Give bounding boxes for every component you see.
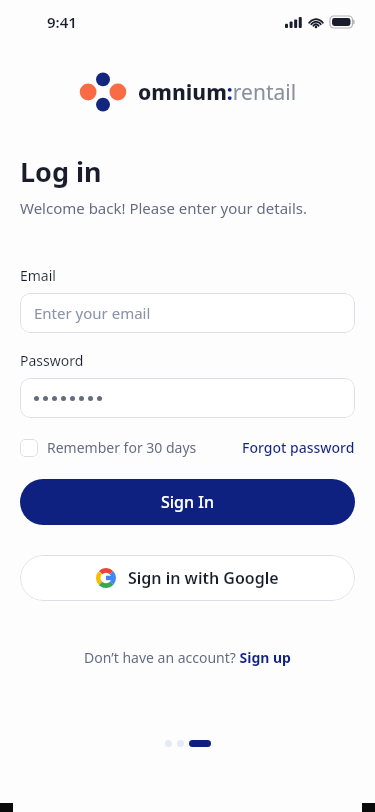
staticText: 9:41 xyxy=(47,12,77,32)
staticText: Password xyxy=(20,351,84,370)
staticText: Don’t have an account? Sign up xyxy=(84,648,291,667)
button[interactable]: Remember for 30 days xyxy=(20,438,197,457)
staticText: omnium:rentail xyxy=(138,78,297,107)
button[interactable]: Enter your email xyxy=(20,293,355,333)
staticText: Sign In xyxy=(161,491,214,513)
staticText: Remember for 30 days xyxy=(47,438,197,457)
other: Cellular signal xyxy=(285,17,302,28)
button[interactable]: Forgot password xyxy=(242,438,355,457)
button[interactable] xyxy=(20,378,355,418)
other: Wi-Fi xyxy=(308,17,324,28)
staticText: Forgot password xyxy=(242,438,355,457)
button[interactable]: Sign in with Google xyxy=(20,555,355,601)
staticText: Log in xyxy=(20,153,102,190)
other: Battery xyxy=(330,16,355,28)
staticText: Welcome back! Please enter your details. xyxy=(20,198,308,218)
button[interactable]: Sign In xyxy=(20,479,355,525)
staticText: Sign in with Google xyxy=(128,567,279,589)
staticText: Email xyxy=(20,266,56,285)
button[interactable]: Don’t have an account? Sign up xyxy=(84,648,291,667)
staticText: Enter your email xyxy=(34,303,151,323)
